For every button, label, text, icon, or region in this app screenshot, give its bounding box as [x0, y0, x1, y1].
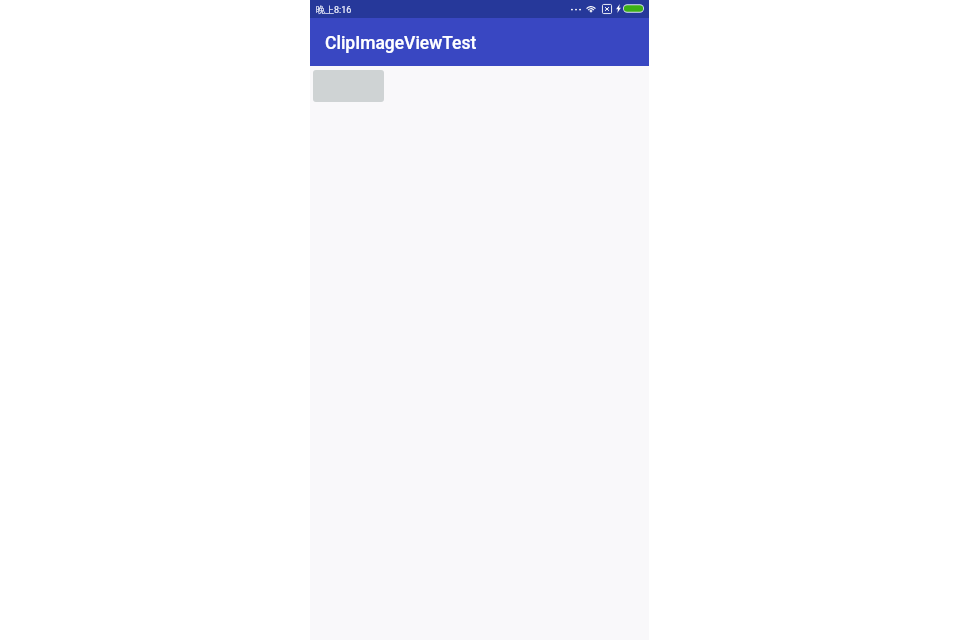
staticText: ClipImageViewTest — [325, 33, 477, 54]
other: No SIM card — [602, 4, 612, 14]
other: Wi-Fi — [586, 4, 596, 13]
button[interactable]: ClipImageViewTest — [310, 18, 649, 66]
other: Battery full — [623, 4, 644, 13]
staticText: 晚上8:16 — [316, 4, 352, 15]
other: Charging — [616, 4, 621, 13]
other: More notifications — [571, 4, 581, 13]
